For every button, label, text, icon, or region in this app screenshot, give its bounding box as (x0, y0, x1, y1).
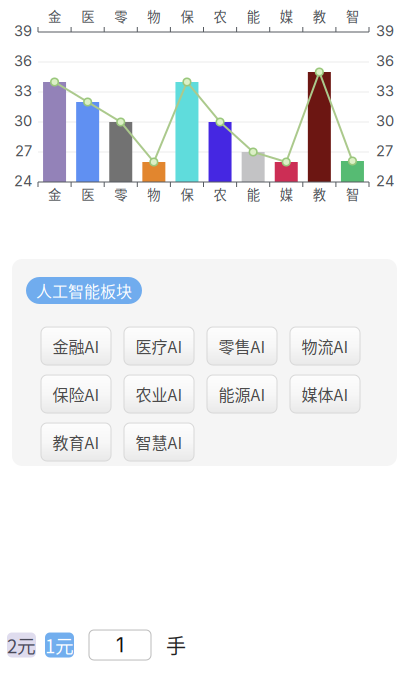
staticText: 教 (313, 184, 326, 204)
button[interactable]: 1元 (45, 632, 74, 657)
staticText: 36 (376, 52, 394, 70)
staticText: 物流AI (301, 334, 348, 358)
staticText: 27 (15, 142, 32, 160)
staticText: 30 (14, 112, 32, 130)
staticText: 智慧AI (135, 430, 182, 454)
staticText: 医 (81, 184, 94, 204)
button[interactable]: 1 (89, 630, 151, 660)
staticText: 36 (14, 52, 32, 70)
button[interactable]: 2元 (7, 632, 36, 657)
staticText: 金 (48, 184, 61, 204)
staticText: 24 (376, 172, 394, 190)
button[interactable]: 零售AI (207, 327, 277, 365)
staticText: 教 (313, 6, 326, 26)
staticText: 金 (48, 6, 61, 26)
staticText: 农 (214, 184, 227, 204)
staticText: 智 (346, 184, 359, 204)
staticText: 保险AI (52, 382, 99, 406)
button[interactable]: 能源AI (207, 375, 277, 413)
staticText: 39 (376, 22, 394, 40)
staticText: 人工智能板块 (36, 279, 132, 302)
staticText: 33 (14, 82, 32, 100)
button[interactable]: 农业AI (124, 375, 194, 413)
staticText: 手 (166, 630, 186, 659)
staticText: 媒 (280, 184, 293, 204)
button[interactable]: 物流AI (290, 327, 360, 365)
staticText: 27 (376, 142, 393, 160)
staticText: 媒 (280, 6, 293, 26)
staticText: 1元 (45, 631, 74, 658)
staticText: 能源AI (218, 382, 265, 406)
button[interactable]: 人工智能板块 (26, 277, 142, 304)
staticText: 物 (147, 184, 160, 204)
button[interactable]: 金融AI (41, 327, 111, 365)
staticText: 2元 (7, 631, 36, 658)
staticText: 零售AI (218, 334, 265, 358)
staticText: 媒体AI (301, 382, 348, 406)
staticText: 零 (114, 184, 127, 204)
staticText: 智 (346, 6, 359, 26)
button[interactable]: 媒体AI (290, 375, 360, 413)
staticText: 农业AI (135, 382, 182, 406)
staticText: 30 (376, 112, 394, 130)
staticText: 医疗AI (135, 334, 182, 358)
staticText: 金融AI (52, 334, 99, 358)
staticText: 33 (376, 82, 394, 100)
staticText: 物 (147, 6, 160, 26)
staticText: 教育AI (52, 430, 99, 454)
button[interactable]: 保险AI (41, 375, 111, 413)
staticText: 1 (116, 633, 124, 657)
staticText: 保 (180, 6, 193, 26)
staticText: 能 (247, 184, 260, 204)
button[interactable]: 智慧AI (124, 423, 194, 461)
staticText: 能 (247, 6, 260, 26)
staticText: 24 (14, 172, 32, 190)
staticText: 农 (214, 6, 227, 26)
staticText: 医 (81, 6, 94, 26)
staticText: 保 (180, 184, 193, 204)
staticText: 39 (14, 22, 32, 40)
staticText: 零 (114, 6, 127, 26)
button[interactable]: 教育AI (41, 423, 111, 461)
button[interactable]: 医疗AI (124, 327, 194, 365)
